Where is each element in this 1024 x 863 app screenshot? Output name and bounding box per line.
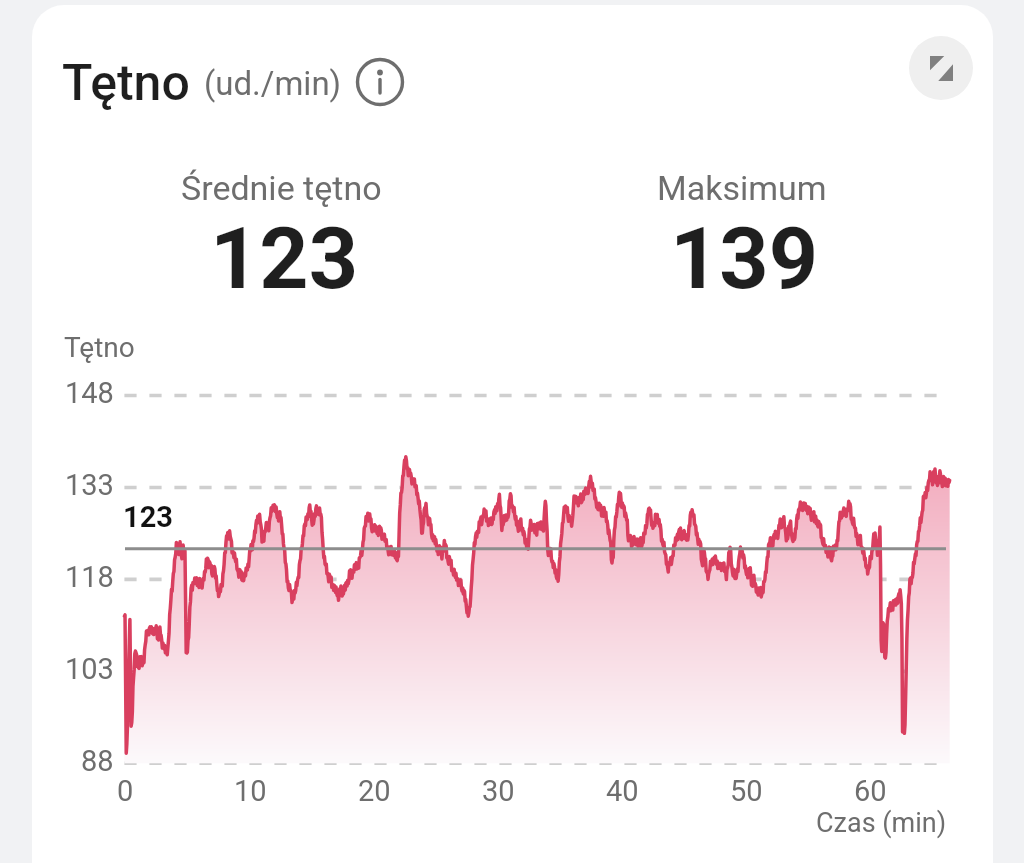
staticText: 123 — [210, 208, 359, 309]
staticText: 20 — [358, 774, 391, 808]
staticText: 50 — [730, 774, 763, 808]
button[interactable]: Przełącz wykres — [909, 36, 973, 100]
button[interactable]: Informacje — [356, 58, 404, 106]
staticText: 88 — [81, 744, 114, 778]
staticText: 30 — [482, 774, 515, 808]
staticText: 148 — [65, 376, 114, 410]
staticText: 10 — [234, 774, 267, 808]
staticText: 118 — [65, 560, 114, 594]
staticText: 133 — [65, 468, 114, 502]
staticText: Maksimum — [657, 168, 827, 208]
staticText: Średnie tętno — [181, 168, 382, 208]
staticText: 40 — [606, 774, 639, 808]
staticText: Tętno — [62, 54, 190, 113]
staticText: 60 — [854, 774, 887, 808]
staticText: 0 — [117, 774, 134, 808]
staticText: 123 — [123, 500, 173, 534]
staticText: (ud./min) — [204, 64, 342, 103]
staticText: 139 — [670, 208, 819, 309]
staticText: Czas (min) — [816, 807, 947, 839]
staticText: 103 — [65, 652, 114, 686]
staticText: Tętno — [64, 331, 135, 364]
